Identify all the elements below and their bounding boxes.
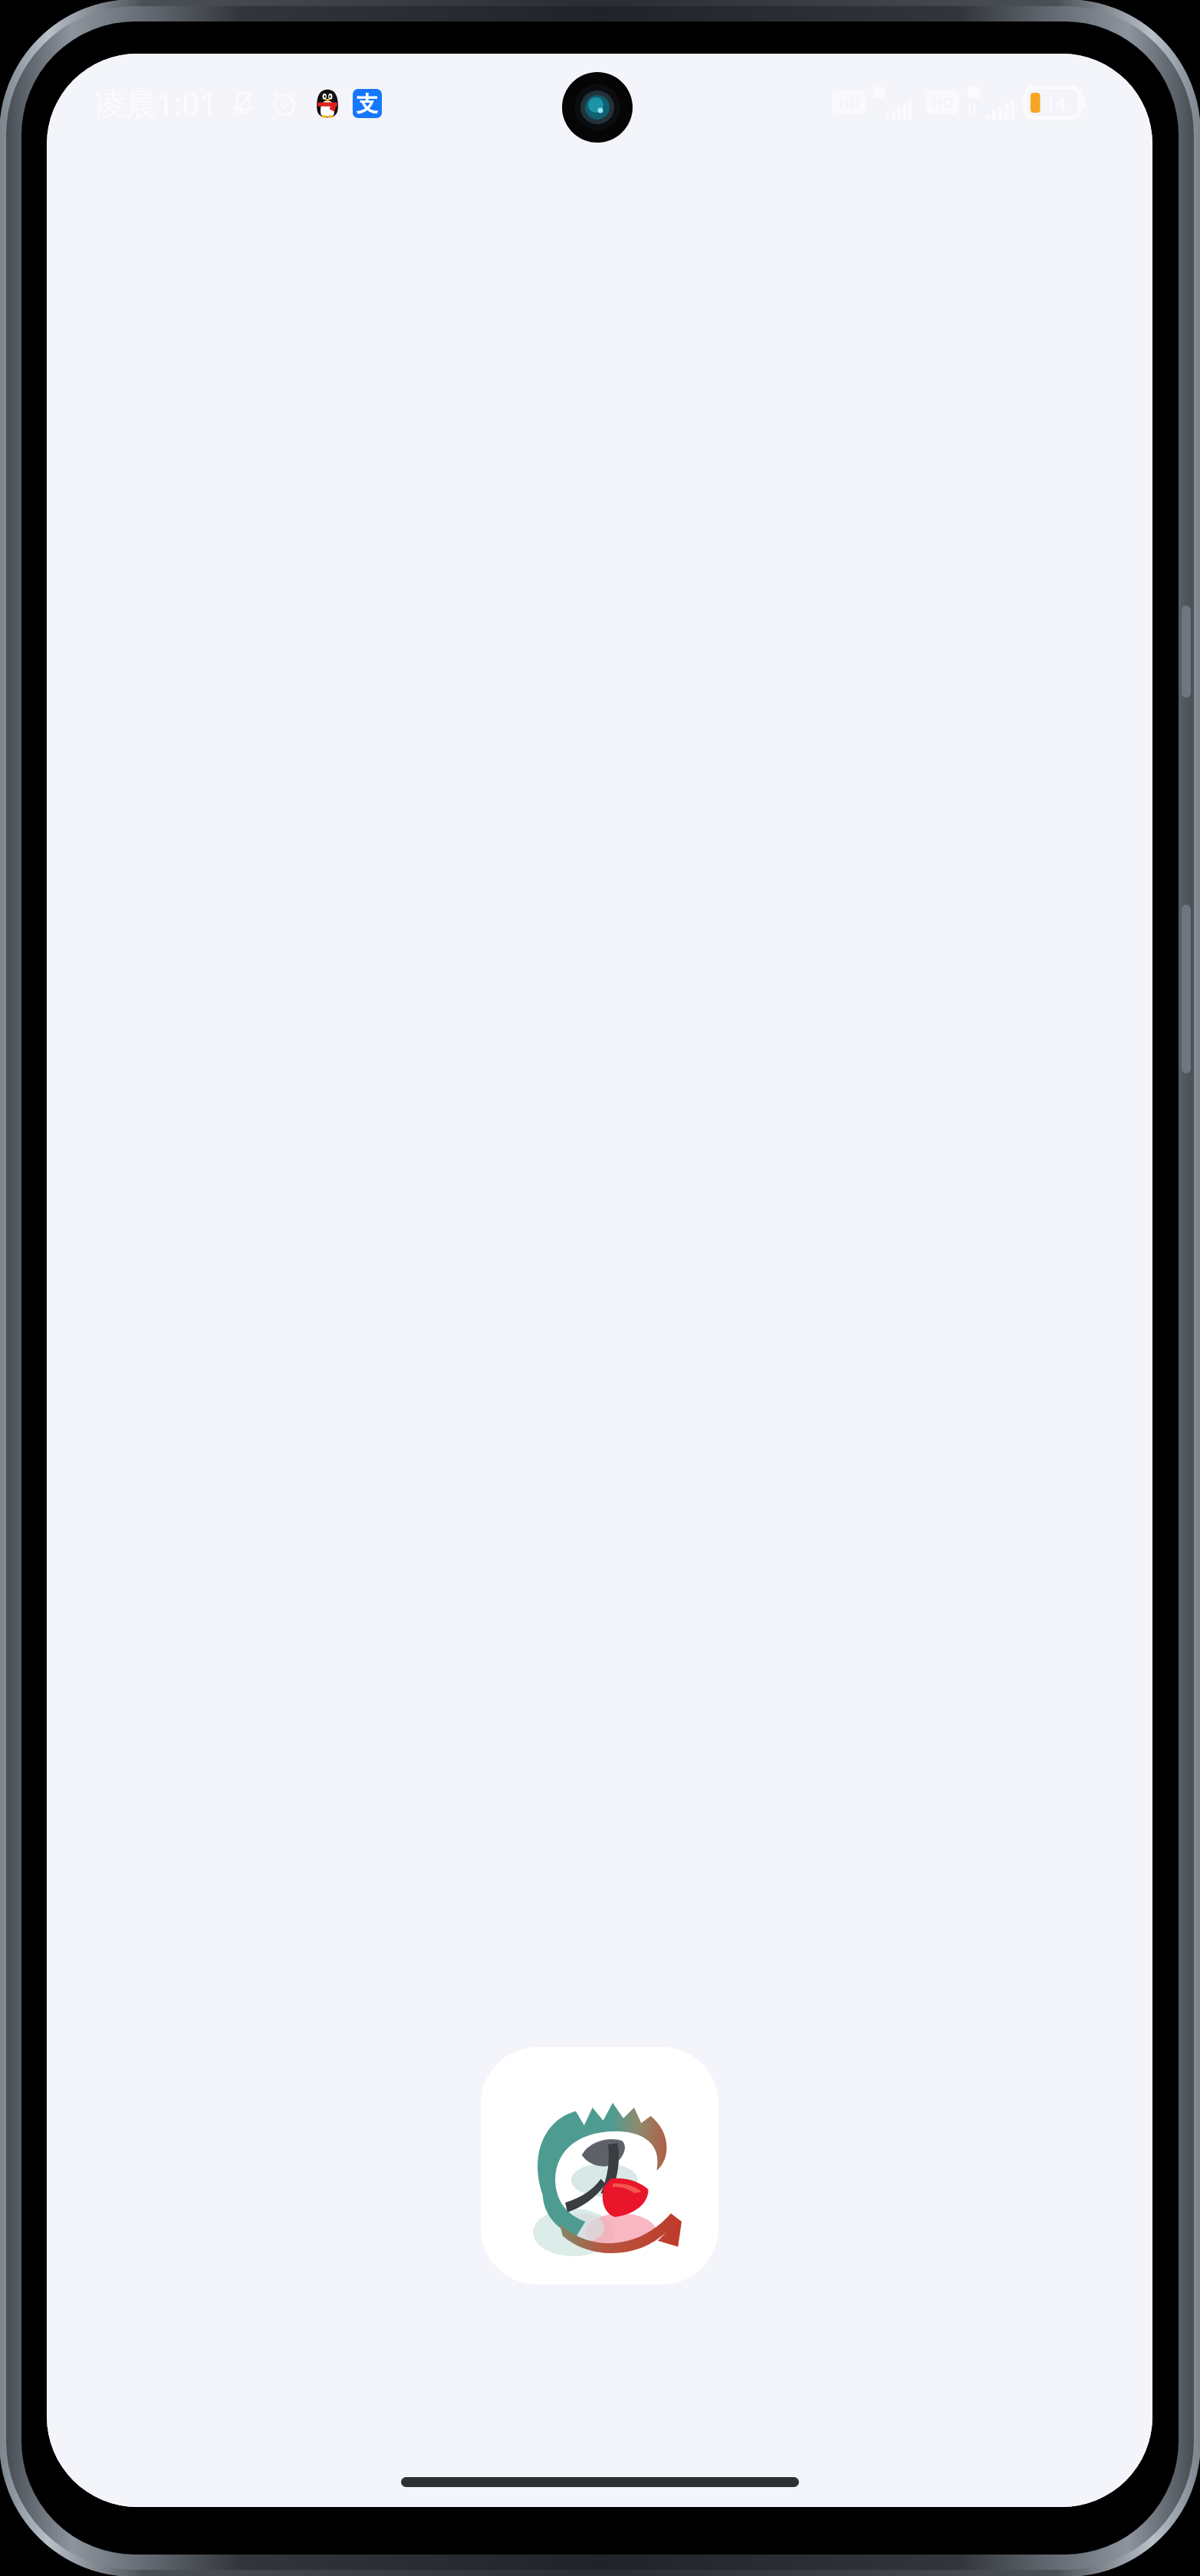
staticText: 支 xyxy=(357,90,378,117)
button[interactable]: Home gesture bar xyxy=(401,2477,799,2487)
button[interactable]: App logo xyxy=(481,2047,718,2285)
